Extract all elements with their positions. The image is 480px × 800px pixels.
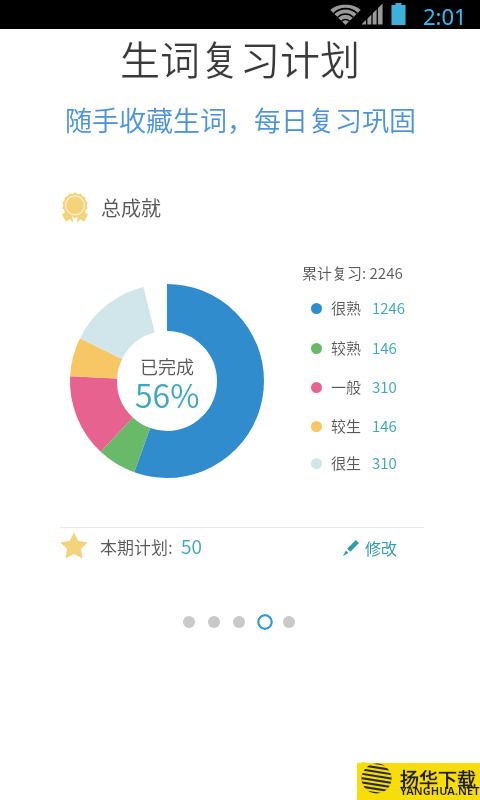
button[interactable]: 很生 — [311, 452, 397, 474]
button[interactable]: Page 4 — [257, 614, 273, 630]
staticText: YANGHUA.NET — [400, 783, 480, 798]
staticText: 已完成 — [140, 353, 194, 379]
button[interactable]: Page 1 — [183, 616, 195, 628]
button[interactable]: 本期计划: — [60, 532, 202, 560]
staticText: 310 — [372, 376, 397, 398]
staticText: 扬华下载 — [400, 765, 477, 793]
button[interactable]: 一般 — [311, 376, 397, 398]
staticText: 1246 — [372, 297, 405, 319]
staticText: 总成就 — [101, 193, 161, 222]
button[interactable]: 较生 — [311, 415, 397, 437]
staticText: 310 — [372, 452, 397, 474]
staticText: 50 — [181, 532, 202, 560]
button[interactable]: 修改 — [343, 536, 398, 559]
staticText: 56% — [135, 371, 200, 417]
button[interactable]: Page 3 — [233, 616, 245, 628]
staticText: 较生 — [331, 415, 362, 437]
staticText: 2:01 — [423, 1, 467, 30]
staticText: 修改 — [365, 536, 398, 559]
staticText: 很熟 — [331, 297, 362, 319]
staticText: 较熟 — [331, 337, 362, 359]
staticText: 一般 — [331, 376, 362, 398]
staticText: 随手收藏生词，每日复习巩固 — [65, 100, 416, 139]
staticText: 累计复习: 2246 — [302, 262, 403, 284]
staticText: 146 — [372, 337, 397, 359]
button[interactable]: 很熟 — [311, 297, 405, 319]
staticText: 本期计划: — [100, 534, 177, 559]
button[interactable]: 较熟 — [311, 337, 397, 359]
button[interactable]: Page 5 — [283, 616, 295, 628]
staticText: 146 — [372, 415, 397, 437]
staticText: 生词复习计划 — [120, 29, 360, 87]
button[interactable]: Page 2 — [208, 616, 220, 628]
staticText: 很生 — [331, 452, 362, 474]
button[interactable]: 总成就 — [62, 192, 161, 223]
